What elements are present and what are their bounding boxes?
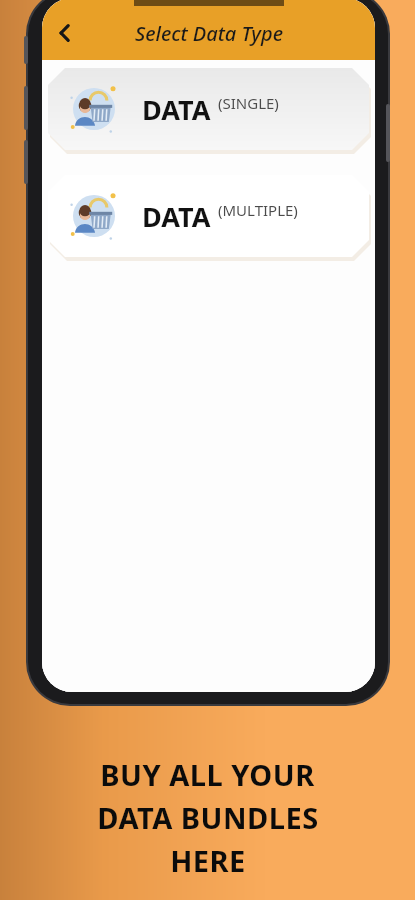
staticText: (MULTIPLE) <box>218 200 298 220</box>
button[interactable]: DATA <box>48 68 369 150</box>
staticText: DATA <box>142 198 211 235</box>
staticText: DATA BUNDLES <box>97 798 319 837</box>
staticText: Select Data Type <box>135 20 283 47</box>
staticText: BUY ALL YOUR <box>100 755 315 794</box>
button[interactable]: DATA <box>48 175 369 257</box>
button[interactable]: Back <box>42 10 88 56</box>
staticText: HERE <box>170 841 246 880</box>
staticText: (SINGLE) <box>218 93 279 113</box>
staticText: DATA <box>142 91 211 128</box>
